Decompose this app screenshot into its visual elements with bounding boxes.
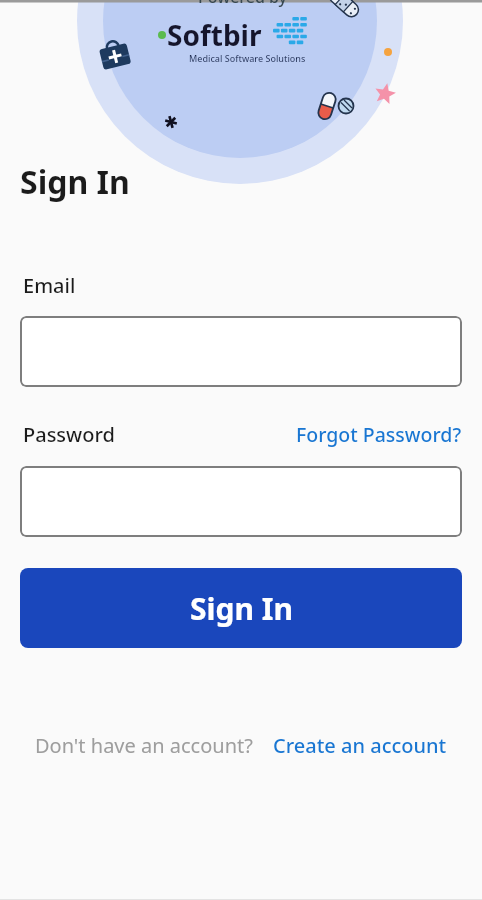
staticText: Sign In	[20, 160, 130, 204]
staticText: Medical Software Solutions	[189, 52, 306, 64]
button[interactable]	[20, 316, 462, 387]
staticText: Password	[23, 421, 115, 448]
staticText: Email	[23, 272, 76, 299]
staticText: Don't have an account?	[35, 732, 253, 759]
staticText: Sign In	[190, 588, 293, 629]
button[interactable]: Create an account	[273, 732, 447, 759]
staticText: Powered by	[198, 0, 288, 8]
button[interactable]: Forgot Password?	[296, 421, 462, 448]
staticText: Softbir	[167, 16, 262, 54]
button[interactable]: Sign In	[20, 568, 462, 648]
button[interactable]	[20, 466, 462, 537]
